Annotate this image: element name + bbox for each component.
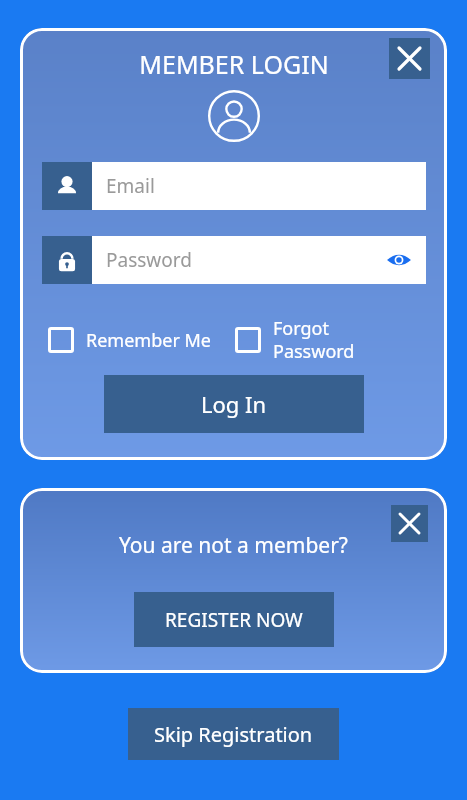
staticText: Remember Me [86, 328, 211, 353]
button[interactable]: Email [42, 162, 426, 210]
staticText: MEMBER LOGIN [139, 47, 329, 81]
staticText: Email [106, 173, 155, 199]
button[interactable]: Close [391, 505, 428, 542]
staticText: Log In [201, 389, 267, 419]
button[interactable]: Remember Me [48, 327, 211, 353]
staticText: Password [106, 247, 192, 273]
button[interactable]: Password [42, 236, 426, 284]
button[interactable]: Forgot Password [235, 316, 355, 363]
button[interactable]: Log In [104, 375, 364, 433]
button[interactable]: Show password [384, 245, 414, 275]
staticText: You are not a member? [119, 531, 348, 560]
button[interactable]: REGISTER NOW [134, 592, 334, 647]
button[interactable]: Close [389, 38, 430, 79]
staticText: Skip Registration [154, 721, 313, 748]
button[interactable]: Skip Registration [128, 708, 339, 760]
staticText: Forgot Password [273, 316, 355, 363]
staticText: REGISTER NOW [165, 607, 303, 633]
